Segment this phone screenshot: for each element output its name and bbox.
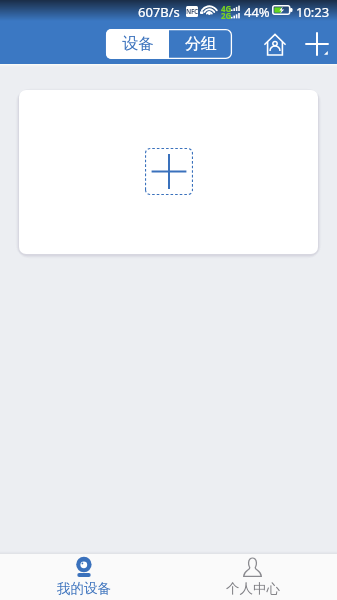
button[interactable]: Home [259, 28, 291, 60]
button[interactable]: 我的设备 [0, 554, 168, 600]
staticText: 分组 [185, 34, 217, 54]
staticText: 10:23 [296, 3, 330, 21]
button[interactable]: Add [301, 28, 333, 60]
button[interactable]: 设备 [106, 29, 169, 59]
button[interactable]: 个人中心 [168, 554, 337, 600]
staticText: 2G [221, 10, 232, 21]
staticText: 我的设备 [57, 580, 111, 597]
staticText: NFC [186, 7, 198, 16]
button[interactable]: Add device [145, 148, 193, 195]
staticText: 个人中心 [226, 580, 280, 597]
staticText: 设备 [122, 34, 154, 54]
staticText: 607B/s [138, 3, 180, 21]
staticText: 44% [244, 3, 270, 21]
button[interactable]: 分组 [169, 29, 232, 59]
staticText: 4G [221, 3, 232, 14]
